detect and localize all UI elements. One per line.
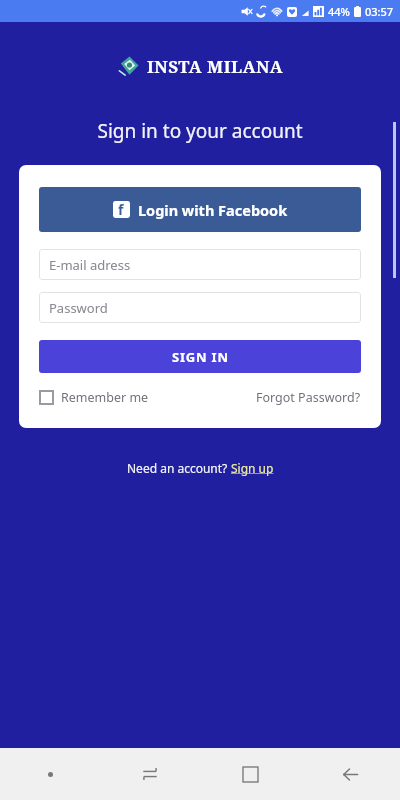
button[interactable]: Home: [200, 748, 300, 800]
button[interactable]: Forgot Password?: [256, 389, 361, 406]
button[interactable]: Password: [39, 292, 361, 323]
staticText: Need an account?: [127, 460, 231, 476]
staticText: 44%: [328, 4, 350, 19]
staticText: SIGN IN: [172, 348, 229, 366]
button[interactable]: Sign up: [231, 460, 274, 476]
button[interactable]: Remember me: [39, 389, 149, 406]
button[interactable]: E-mail adress: [39, 249, 361, 280]
button[interactable]: f: [39, 187, 361, 232]
other: Menu indicator: [0, 748, 100, 800]
button[interactable]: Recents: [100, 748, 200, 800]
staticText: INSTA MILANA: [147, 55, 284, 78]
staticText: Password: [49, 299, 108, 317]
button[interactable]: SIGN IN: [39, 340, 361, 373]
staticText: f: [118, 200, 124, 219]
staticText: Remember me: [61, 389, 149, 406]
staticText: 03:57: [365, 4, 394, 19]
staticText: Sign in to your account: [97, 118, 303, 144]
staticText: Login with Facebook: [138, 200, 288, 220]
staticText: E-mail adress: [49, 256, 131, 274]
button[interactable]: Back: [300, 748, 400, 800]
staticText: Sign up: [231, 460, 274, 476]
staticText: Forgot Password?: [256, 389, 361, 406]
